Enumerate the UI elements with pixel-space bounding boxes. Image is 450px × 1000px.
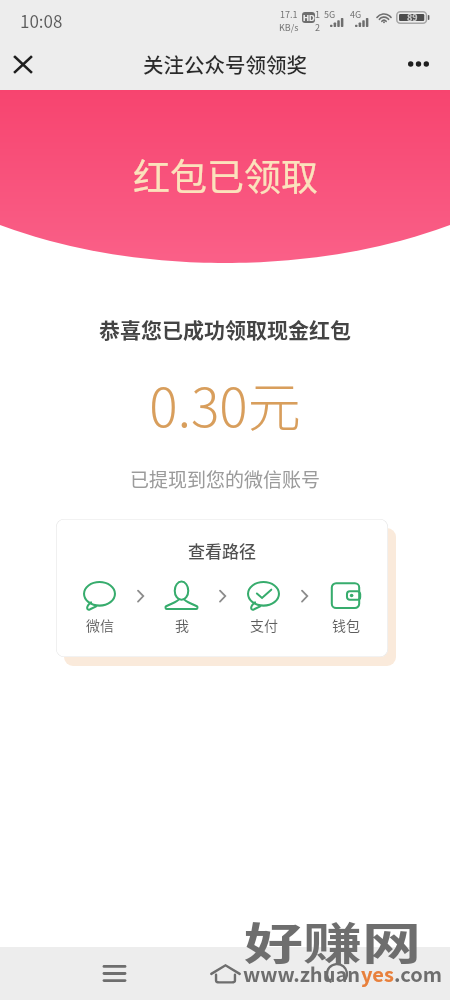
button[interactable]: Close (0, 38, 46, 90)
staticText: 2 (315, 21, 320, 34)
button[interactable]: 钱包 (318, 581, 373, 635)
staticText: KB/s (279, 21, 299, 34)
button[interactable]: 微信 (72, 581, 127, 635)
staticText: 关注公众号领领奖 (143, 49, 307, 79)
staticText: 0.30元 (0, 366, 450, 443)
staticText: 钱包 (332, 615, 360, 635)
staticText: 恭喜您已成功领取现金红包 (0, 314, 450, 344)
staticText: 5G (324, 8, 336, 21)
staticText: 红包已领取 (133, 148, 318, 202)
staticText: 支付 (250, 615, 278, 635)
button[interactable]: 支付 (236, 581, 291, 635)
staticText: 17.1 (280, 8, 298, 21)
staticText: 4G (350, 8, 362, 21)
staticText: 微信 (86, 615, 114, 635)
button[interactable]: More options (395, 38, 441, 90)
button[interactable]: Recents (59, 947, 170, 1000)
button[interactable]: 我 (154, 581, 209, 635)
staticText: 已提现到您的微信账号 (0, 465, 450, 493)
staticText: 查看路径 (188, 538, 256, 563)
staticText: 10:08 (20, 8, 63, 33)
button[interactable]: Home (170, 947, 281, 1000)
staticText: 89 (407, 11, 418, 24)
staticText: yes (361, 959, 394, 988)
button[interactable]: 查看路径 (56, 519, 388, 657)
staticText: 好赚网 (244, 908, 422, 973)
staticText: www.zhuan (243, 959, 361, 988)
staticText: 1 (315, 8, 320, 21)
staticText: HD (303, 12, 315, 23)
staticText: 我 (175, 615, 189, 635)
button[interactable]: Back (281, 947, 392, 1000)
staticText: .com (394, 959, 442, 988)
